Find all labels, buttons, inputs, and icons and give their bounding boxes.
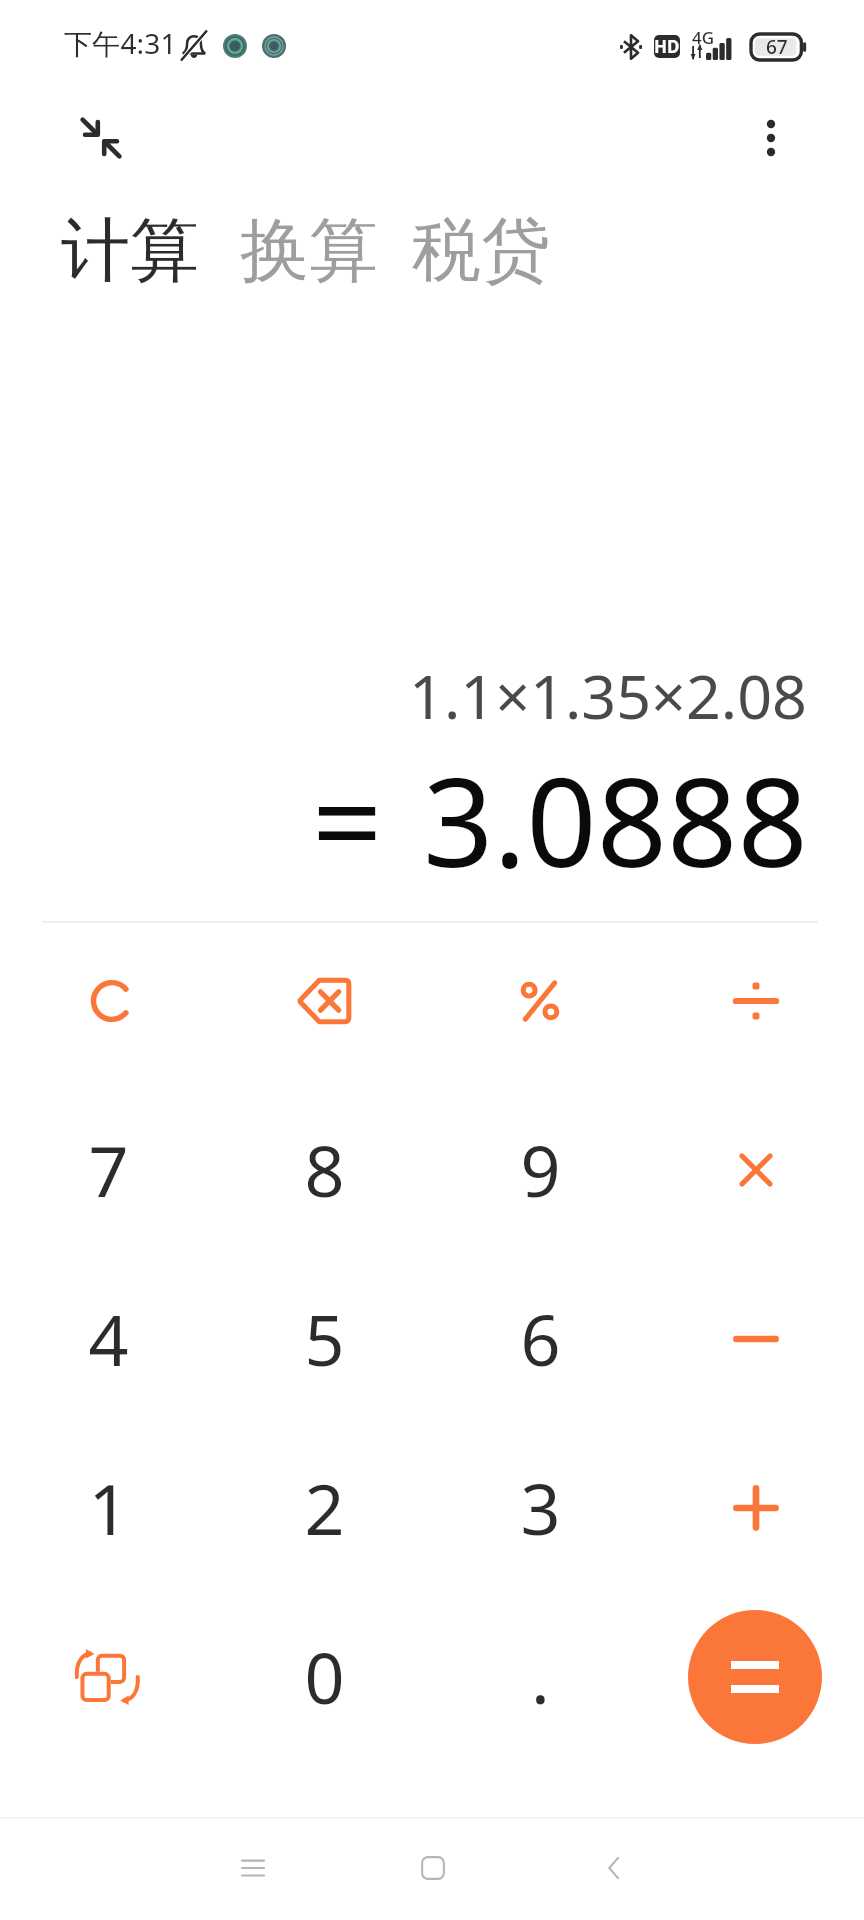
button[interactable]: Divide [648, 916, 864, 1085]
staticText: 计算 [61, 208, 199, 295]
staticText: 5 [304, 1291, 345, 1386]
staticText: 换算 [240, 208, 378, 295]
button[interactable]: Back [559, 1813, 669, 1920]
button[interactable]: 1 [0, 1423, 216, 1592]
button[interactable]: Multiply [648, 1085, 864, 1254]
button[interactable]: Collapse [66, 103, 136, 173]
button[interactable]: 税贷 [412, 204, 550, 299]
button[interactable]: Unit converter [0, 1592, 216, 1761]
button[interactable]: 4 [0, 1254, 216, 1423]
staticText: 67 [766, 34, 788, 60]
button[interactable]: 计算 [61, 204, 199, 299]
staticText: 9 [520, 1122, 561, 1217]
staticText: 4 [88, 1291, 129, 1386]
button[interactable]: Percent [432, 916, 648, 1085]
staticText: = [312, 736, 383, 904]
staticText: 2 [304, 1460, 345, 1555]
staticText: HD [654, 35, 680, 58]
staticText: 8 [304, 1122, 345, 1217]
staticText: 下午4:31 [64, 24, 177, 62]
staticText: 0 [304, 1629, 345, 1724]
button[interactable]: Backspace [216, 916, 432, 1085]
staticText: 3.0888 [423, 736, 808, 904]
button[interactable]: More options [736, 103, 806, 173]
button[interactable]: Equals [688, 1610, 822, 1744]
button[interactable]: 8 [216, 1085, 432, 1254]
staticText: 6 [520, 1291, 561, 1386]
staticText: 1.1×1.35×2.08 [409, 654, 807, 737]
staticText: 7 [88, 1122, 129, 1217]
button[interactable]: Minus [648, 1254, 864, 1423]
staticText: 税贷 [412, 208, 550, 295]
staticText: . [531, 1629, 550, 1724]
button[interactable]: 7 [0, 1085, 216, 1254]
staticText: 3 [520, 1460, 561, 1555]
button[interactable]: Home [378, 1813, 488, 1920]
button[interactable]: Plus [648, 1423, 864, 1592]
button[interactable]: 0 [216, 1592, 432, 1761]
button[interactable]: 3 [432, 1423, 648, 1592]
button[interactable]: 5 [216, 1254, 432, 1423]
button[interactable]: 6 [432, 1254, 648, 1423]
button[interactable]: 换算 [240, 204, 378, 299]
button[interactable]: 2 [216, 1423, 432, 1592]
button[interactable]: Recents [198, 1813, 308, 1920]
button[interactable]: Clear [0, 916, 216, 1085]
button[interactable]: 9 [432, 1085, 648, 1254]
staticText: 4G [692, 26, 715, 49]
button[interactable]: . [432, 1592, 648, 1761]
staticText: 1 [88, 1460, 129, 1555]
